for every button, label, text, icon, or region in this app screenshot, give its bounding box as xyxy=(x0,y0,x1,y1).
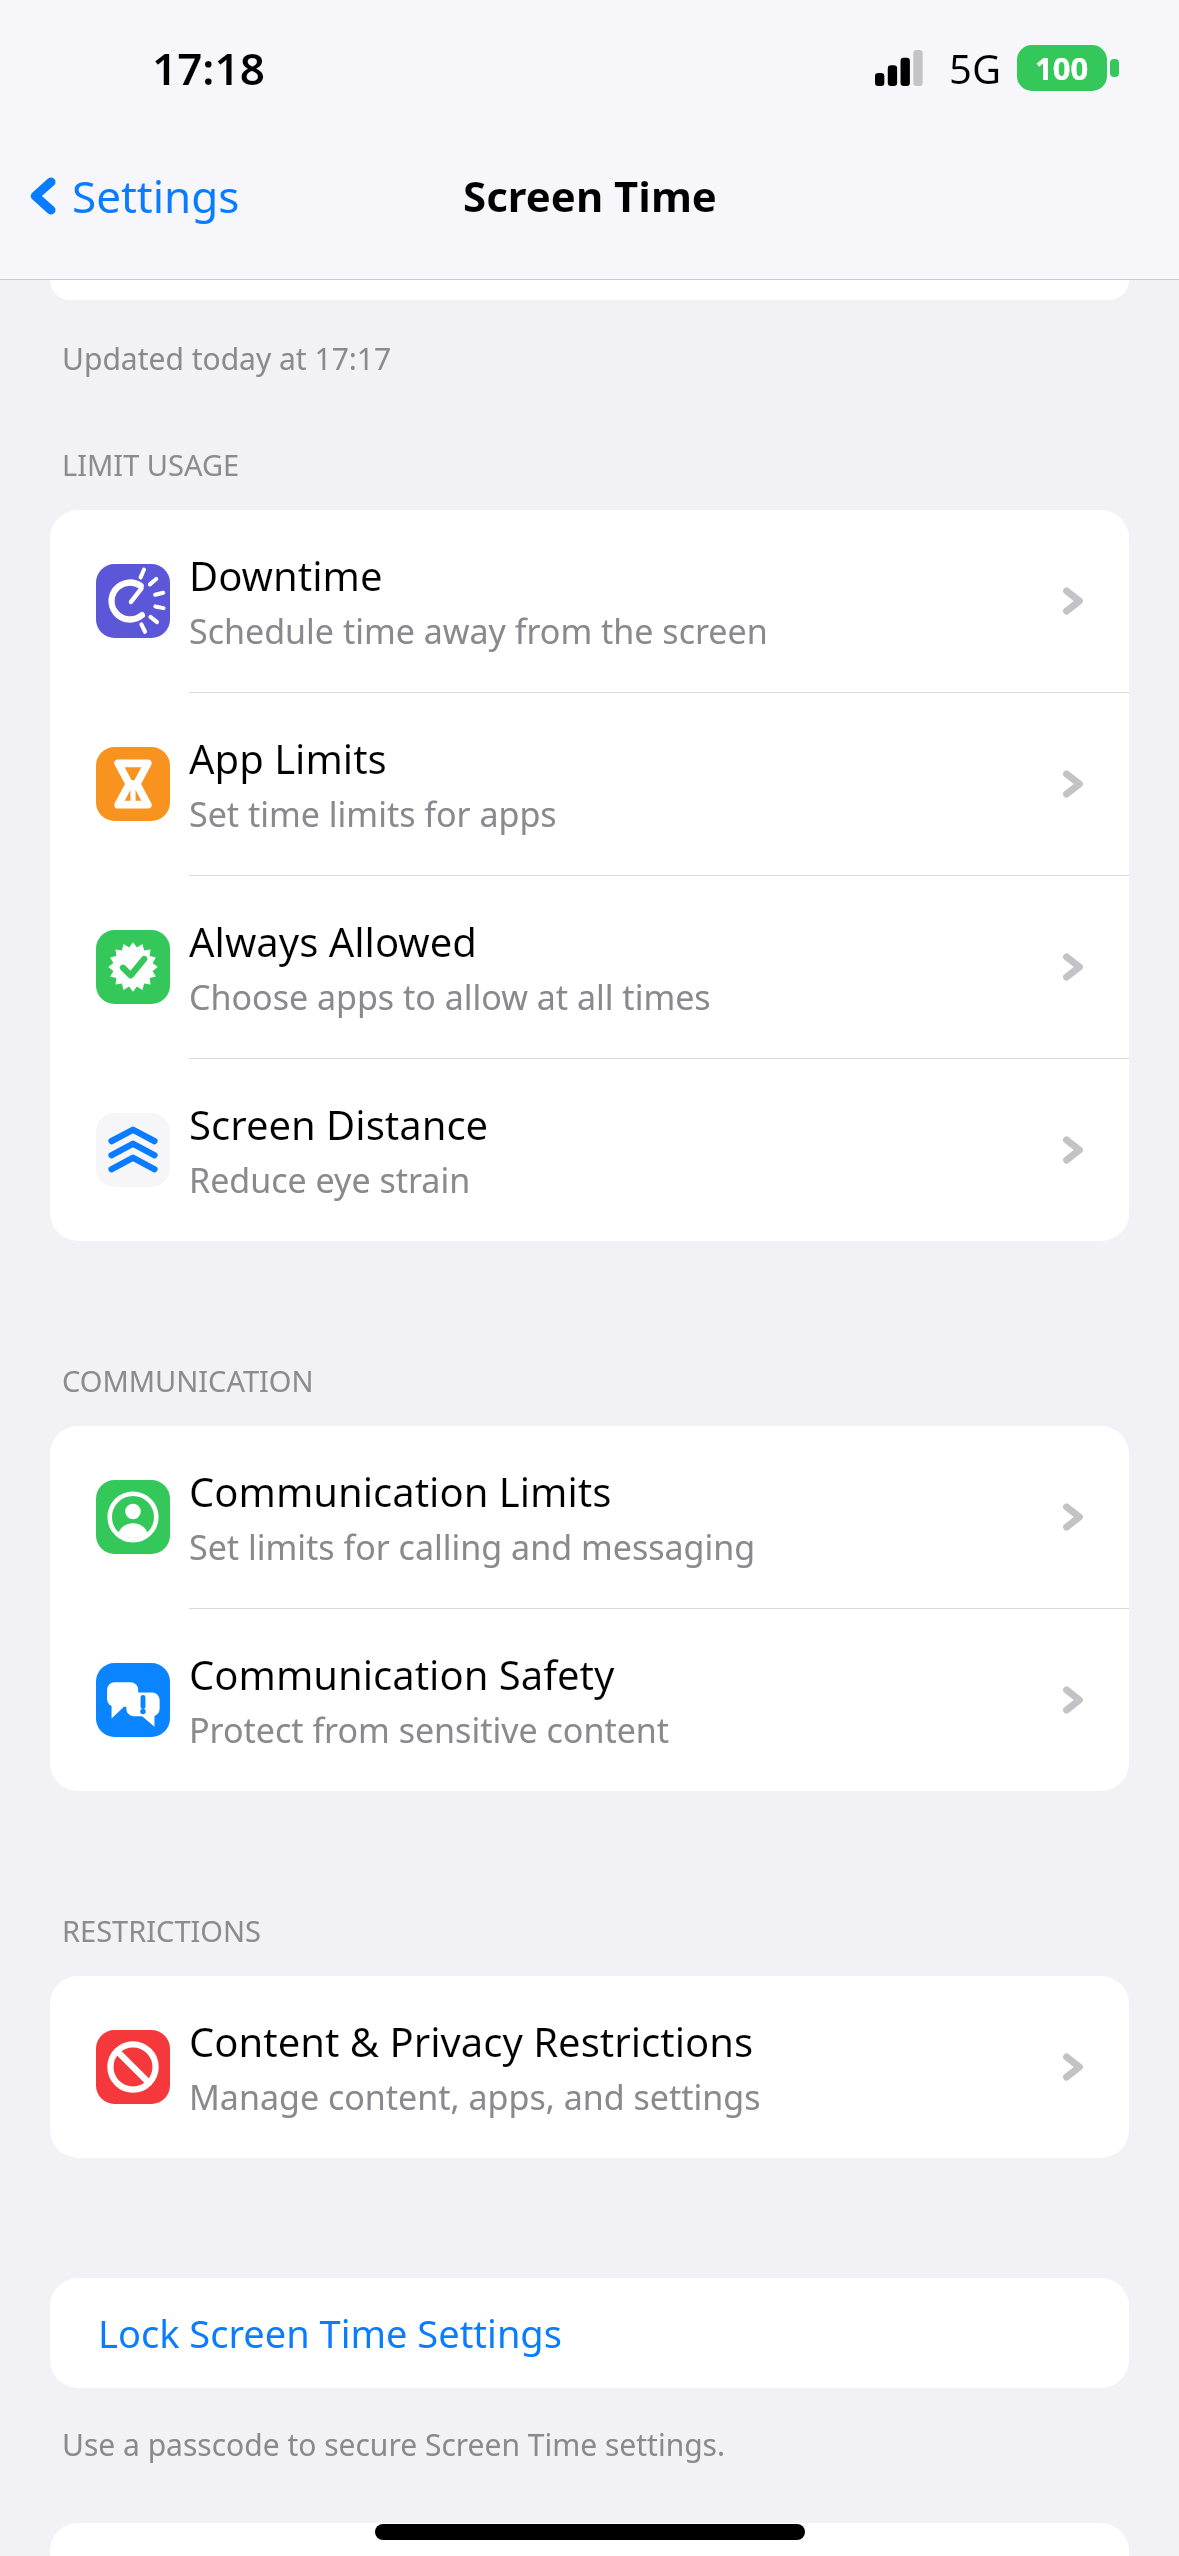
staticText: 5G xyxy=(949,41,1001,95)
staticText: Settings xyxy=(72,166,240,226)
staticText: 17:18 xyxy=(152,38,265,98)
staticText: Screen Distance xyxy=(189,1097,489,1151)
staticText: COMMUNICATION xyxy=(62,1361,314,1400)
button[interactable]: Settings xyxy=(0,152,264,240)
staticText: Protect from sensitive content xyxy=(189,1707,670,1753)
staticText: Use a passcode to secure Screen Time set… xyxy=(62,2424,726,2465)
button[interactable]: Content and Privacy Restrictions xyxy=(50,1976,1129,2158)
staticText: Set limits for calling and messaging xyxy=(189,1524,756,1570)
button[interactable]: Lock Screen Time Settings xyxy=(50,2278,1129,2388)
staticText: Set time limits for apps xyxy=(189,791,557,837)
staticText: Content & Privacy Restrictions xyxy=(189,2014,754,2068)
button[interactable]: App Limits xyxy=(50,693,1129,875)
staticText: App Limits xyxy=(189,731,387,785)
staticText: Downtime xyxy=(189,548,383,602)
staticText: Reduce eye strain xyxy=(189,1157,471,1203)
staticText: Communication Safety xyxy=(189,1647,615,1701)
staticText: Always Allowed xyxy=(189,914,477,968)
button[interactable]: Communication Limits xyxy=(50,1426,1129,1608)
staticText: Schedule time away from the screen xyxy=(189,608,768,654)
other: Communication Limits xyxy=(96,1480,170,1554)
staticText: Manage content, apps, and settings xyxy=(189,2074,761,2120)
other: Content and Privacy Restrictions xyxy=(96,2030,170,2104)
staticText: Screen Time xyxy=(463,167,717,224)
staticText: Updated today at 17:17 xyxy=(62,338,392,379)
button[interactable]: Communication Safety xyxy=(50,1609,1129,1791)
staticText: 100 xyxy=(1035,47,1089,89)
other: Downtime xyxy=(96,564,170,638)
button[interactable]: Downtime xyxy=(50,510,1129,692)
other: Always Allowed xyxy=(96,930,170,1004)
button[interactable]: Always Allowed xyxy=(50,876,1129,1058)
staticText: RESTRICTIONS xyxy=(62,1911,261,1950)
other: App Limits xyxy=(96,747,170,821)
staticText: LIMIT USAGE xyxy=(62,445,240,484)
other: Screen Distance xyxy=(96,1113,170,1187)
staticText: Lock Screen Time Settings xyxy=(98,2307,562,2359)
other: Communication Safety xyxy=(96,1663,170,1737)
staticText: Communication Limits xyxy=(189,1464,612,1518)
button[interactable]: Screen Distance xyxy=(50,1059,1129,1241)
staticText: Choose apps to allow at all times xyxy=(189,974,711,1020)
